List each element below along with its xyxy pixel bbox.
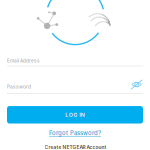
staticText: Forgot Password? — [49, 129, 101, 137]
button[interactable]: LOG IN — [7, 106, 143, 123]
staticText: Password — [7, 84, 31, 90]
staticText: Create NETGEAR Account — [44, 144, 106, 150]
staticText: Email Address — [7, 58, 40, 64]
button[interactable]: Create NETGEAR Account — [44, 144, 106, 150]
button[interactable]: Show password — [0, 0, 150, 150]
button[interactable]: Forgot Password? — [49, 129, 101, 137]
staticText: LOG IN — [65, 112, 85, 118]
